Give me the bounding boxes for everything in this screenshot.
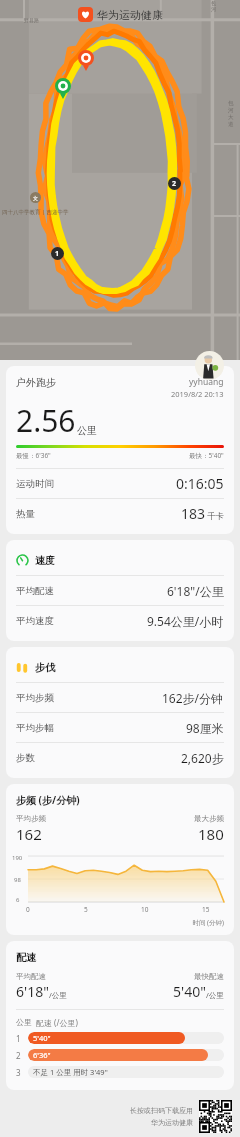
staticText: 6 xyxy=(16,896,20,904)
staticText: 配速 (/公里) xyxy=(36,1017,78,1028)
other: 步伐 xyxy=(16,661,29,674)
staticText: 步伐 xyxy=(35,661,55,674)
staticText: 平均配速 xyxy=(16,585,54,597)
staticText: 2.56 xyxy=(16,400,76,441)
staticText: 10 xyxy=(141,905,149,914)
staticText: 98 xyxy=(14,876,21,884)
staticText: 0 xyxy=(26,905,30,914)
staticText: 配速 xyxy=(16,951,36,964)
staticText: 5'40" xyxy=(33,1033,51,1043)
staticText: 1 xyxy=(55,249,60,259)
staticText: 2 xyxy=(16,1050,21,1061)
staticText: 98厘米 xyxy=(186,720,224,736)
staticText: 公里 xyxy=(16,1017,32,1027)
staticText: 平均步频 xyxy=(16,814,46,823)
staticText: 大 xyxy=(228,114,234,121)
staticText: 2019/8/2 20:13 xyxy=(171,389,224,399)
staticText: 河 xyxy=(228,107,234,114)
staticText: 道 xyxy=(228,121,234,128)
staticText: 6'18"/公里 xyxy=(167,583,224,599)
button[interactable]: 2 xyxy=(6,1049,234,1061)
staticText: 最慢：6'36" xyxy=(16,451,51,460)
staticText: /公里 xyxy=(49,990,67,1000)
staticText: 公里 xyxy=(77,424,97,437)
staticText: 最快：5'40" xyxy=(189,451,224,460)
staticText: 长按或扫码下载应用 xyxy=(130,1106,193,1115)
other: 二维码 xyxy=(199,1100,232,1133)
staticText: 华为运动健康 xyxy=(97,8,163,22)
staticText: 四十八中学教育 | 西递中学 xyxy=(2,208,69,216)
button[interactable]: 平均速度 xyxy=(6,606,234,635)
staticText: 1 xyxy=(16,1033,21,1044)
staticText: 最快配速 xyxy=(194,972,224,981)
staticText: 河 xyxy=(211,6,216,12)
button[interactable]: 热量 xyxy=(6,499,234,528)
staticText: 平均步幅 xyxy=(16,722,54,734)
staticText: 平均步频 xyxy=(16,692,54,704)
button[interactable]: 平均步幅 xyxy=(6,713,234,742)
staticText: 2,620步 xyxy=(181,750,224,766)
staticText: 华为运动健康 xyxy=(151,1118,193,1127)
staticText: 最大步频 xyxy=(194,814,224,823)
staticText: 3 xyxy=(16,1067,21,1078)
staticText: 2 xyxy=(172,179,177,189)
staticText: 6'18" xyxy=(16,982,49,1001)
staticText: 183 xyxy=(181,504,206,523)
staticText: 5'40" xyxy=(173,982,206,1001)
staticText: 平均速度 xyxy=(16,615,54,627)
staticText: 文 xyxy=(33,195,38,201)
staticText: 步数 xyxy=(16,752,35,764)
staticText: 包 xyxy=(211,0,216,6)
staticText: 不足 1 公里 用时 3'49" xyxy=(33,1067,108,1077)
button[interactable]: 平均配速 xyxy=(6,576,234,605)
staticText: 0:16:05 xyxy=(176,474,224,493)
button[interactable]: 3 xyxy=(6,1066,234,1078)
staticText: 运动时间 xyxy=(16,478,54,490)
button[interactable]: 运动时间 xyxy=(6,469,234,498)
staticText: 15 xyxy=(202,905,210,914)
staticText: yyhuang xyxy=(189,376,224,388)
staticText: 6'36" xyxy=(33,1050,51,1060)
button[interactable]: 步数 xyxy=(6,743,234,772)
staticText: 包 xyxy=(228,100,234,107)
staticText: 180 xyxy=(198,824,224,844)
staticText: 热量 xyxy=(16,508,35,520)
staticText: 千卡 xyxy=(207,511,224,522)
other: 速度 xyxy=(16,554,29,567)
button[interactable]: 1 xyxy=(6,1032,234,1044)
staticText: 平均配速 xyxy=(16,972,46,981)
staticText: 速度 xyxy=(35,554,55,567)
button[interactable]: 平均步频 xyxy=(6,683,234,712)
staticText: 9.54公里/小时 xyxy=(147,613,224,629)
staticText: 时间 (分钟) xyxy=(6,918,224,927)
staticText: 户外跑步 xyxy=(16,376,56,389)
staticText: 162步/分钟 xyxy=(162,690,224,706)
staticText: 162 xyxy=(16,824,42,844)
staticText: /公里 xyxy=(206,990,224,1000)
staticText: 步频 (步/分钟) xyxy=(16,793,80,807)
staticText: 5 xyxy=(84,905,88,914)
staticText: 190 xyxy=(12,854,23,862)
button[interactable]: 速度 xyxy=(6,545,234,575)
staticText: 野县路 xyxy=(24,17,39,23)
button[interactable]: 步伐 xyxy=(6,652,234,682)
